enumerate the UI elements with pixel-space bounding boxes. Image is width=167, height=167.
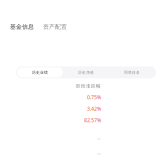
staticText: 历史业绩 [32,70,48,75]
staticText: 阶段涨跌幅 [76,83,101,89]
button[interactable]: 历史净值 [63,67,109,77]
staticText: 0.75% [87,94,101,101]
staticText: 历史净值 [78,70,94,75]
staticText: 3.42% [87,105,101,112]
button[interactable]: 历史业绩 [17,67,63,77]
staticText: 基金信息 [10,23,34,30]
staticText: 82.57% [84,117,101,124]
button[interactable]: 基金信息 [10,23,34,30]
staticText: -- [97,135,101,142]
staticText: -- [97,150,101,157]
staticText: 同类排名 [124,70,140,75]
staticText: 资产配置 [43,23,67,30]
button[interactable]: 同类排名 [109,67,155,77]
button[interactable]: 资产配置 [43,23,67,30]
